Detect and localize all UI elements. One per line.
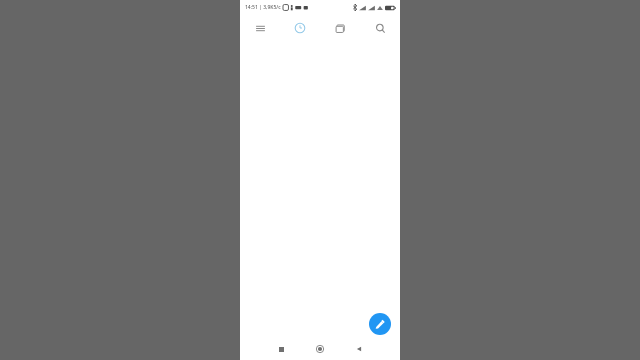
button[interactable]: Search xyxy=(360,14,400,42)
button[interactable]: Folders xyxy=(320,14,360,42)
button[interactable]: Home xyxy=(309,338,331,360)
button[interactable]: Compose xyxy=(369,313,391,335)
button[interactable]: Recents xyxy=(270,338,292,360)
button[interactable]: Recent xyxy=(280,14,320,42)
button[interactable]: Menu xyxy=(240,14,280,42)
button[interactable]: Back xyxy=(348,338,370,360)
staticText: 14:51 | 3,9K5/c xyxy=(245,4,281,11)
